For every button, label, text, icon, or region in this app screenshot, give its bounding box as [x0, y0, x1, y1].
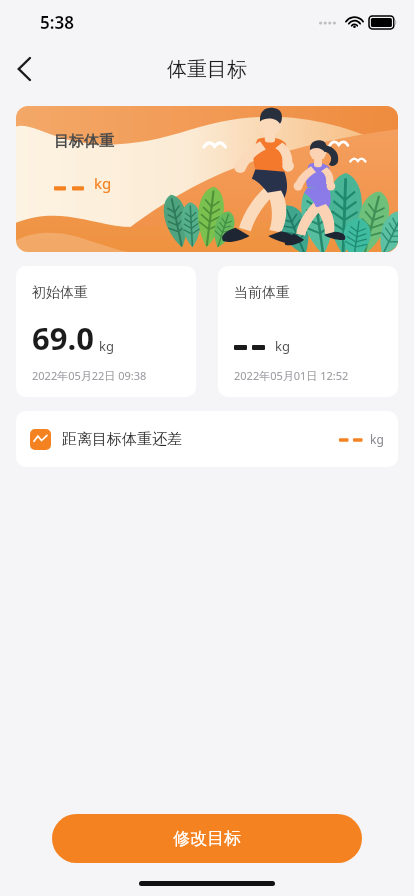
staticText: kg	[370, 431, 384, 447]
button[interactable]: 距离目标体重还差	[16, 411, 398, 467]
button[interactable]: 当前体重	[218, 266, 398, 397]
button[interactable]: 目标体重	[16, 106, 398, 252]
staticText: kg	[275, 337, 290, 355]
staticText: 体重目标	[167, 57, 247, 82]
staticText: 距离目标体重还差	[62, 430, 182, 449]
staticText: 目标体重	[54, 132, 114, 151]
staticText: 当前体重	[234, 284, 290, 302]
staticText: 2022年05月01日 12:52	[234, 368, 349, 383]
staticText: 2022年05月22日 09:38	[32, 368, 147, 383]
button[interactable]: 初始体重	[16, 266, 196, 397]
button[interactable]: Back	[0, 45, 48, 93]
button[interactable]: 修改目标	[52, 814, 362, 863]
staticText: 修改目标	[173, 828, 241, 849]
staticText: 5:38	[40, 11, 74, 34]
staticText: kg	[99, 337, 114, 355]
staticText: 初始体重	[32, 284, 88, 302]
staticText: 69.0	[32, 317, 94, 359]
staticText: kg	[94, 173, 112, 193]
